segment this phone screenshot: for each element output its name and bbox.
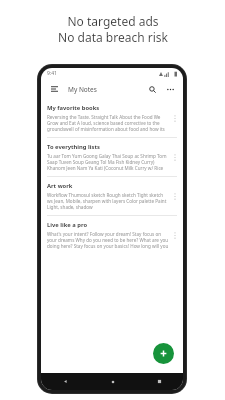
button[interactable]: Note options — [170, 149, 180, 165]
button[interactable]: Search — [145, 82, 159, 96]
staticText: Workflow Thumosul sketch Rough sketch Ti… — [47, 192, 170, 210]
button[interactable]: More options — [163, 82, 177, 96]
button[interactable]: Recent apps — [136, 373, 183, 390]
button[interactable]: Note options — [170, 110, 180, 126]
button[interactable]: Back — [41, 373, 89, 390]
staticText: 9:41 — [47, 70, 57, 77]
staticText: What's your intent? Follow your dream! S… — [47, 231, 170, 249]
button[interactable]: Menu — [47, 82, 61, 96]
staticText: To everything lists — [47, 143, 100, 151]
staticText: Art work — [47, 182, 73, 190]
staticText: No data breach risk — [58, 29, 168, 45]
button[interactable]: Live like a pro — [41, 216, 183, 254]
staticText: My favorite books — [47, 104, 100, 112]
staticText: No targeted ads — [67, 13, 159, 29]
button[interactable]: Art work — [41, 177, 183, 215]
button[interactable]: My favorite books — [41, 99, 183, 137]
button[interactable]: Note options — [170, 227, 180, 243]
staticText: Live like a pro — [47, 221, 88, 229]
button[interactable]: Note options — [170, 188, 180, 204]
button[interactable]: Add note — [153, 343, 174, 364]
button[interactable]: Home — [89, 373, 136, 390]
staticText: Tu aar Tom Yum Goong Galay Thai Soup ac … — [47, 153, 170, 171]
button[interactable]: To everything lists — [41, 138, 183, 176]
staticText: Reversing the Taste. Straight Talk About… — [47, 114, 170, 132]
staticText: My Notes — [68, 85, 97, 94]
